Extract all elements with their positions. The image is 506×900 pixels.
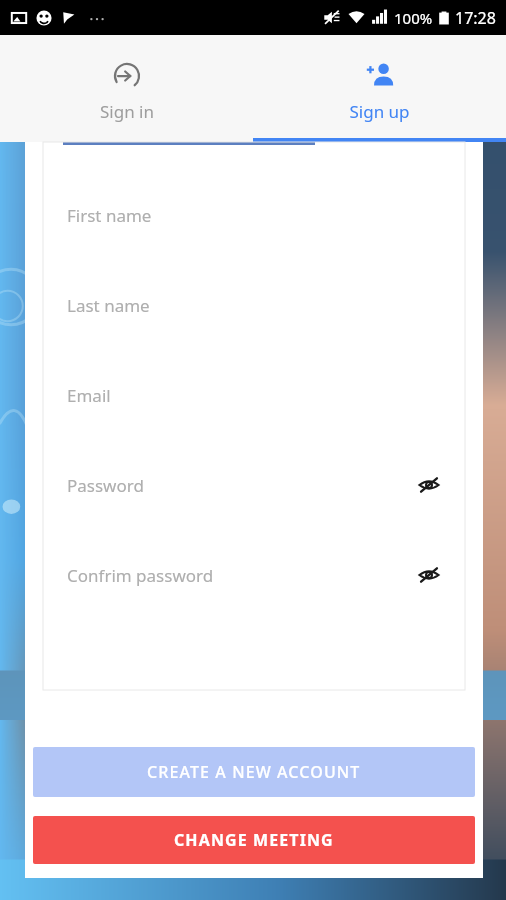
other: Sign in bbox=[112, 61, 142, 91]
button[interactable]: CREATE A NEW ACCOUNT bbox=[33, 747, 475, 797]
staticText: Sign up bbox=[349, 100, 410, 123]
button[interactable]: Confrim password bbox=[43, 560, 465, 590]
staticText: 17:28 bbox=[455, 7, 496, 29]
staticText: Email bbox=[67, 384, 111, 407]
staticText: CHANGE MEETING bbox=[174, 829, 334, 851]
button[interactable]: Toggle password visibility bbox=[415, 471, 443, 499]
button[interactable]: Sign in bbox=[0, 35, 253, 123]
staticText: 100% bbox=[394, 8, 433, 28]
button[interactable]: Sign up bbox=[253, 35, 506, 123]
staticText: Sign in bbox=[100, 100, 154, 123]
button[interactable]: CHANGE MEETING bbox=[33, 816, 475, 864]
button[interactable]: Email bbox=[43, 380, 465, 410]
other: Sign up bbox=[365, 61, 395, 91]
staticText: CREATE A NEW ACCOUNT bbox=[147, 761, 361, 783]
staticText: Password bbox=[67, 474, 144, 497]
staticText: Last name bbox=[67, 294, 150, 317]
button[interactable]: First name bbox=[43, 200, 465, 230]
staticText: First name bbox=[67, 204, 152, 227]
staticText: Confrim password bbox=[67, 564, 214, 587]
button[interactable]: Last name bbox=[43, 290, 465, 320]
button[interactable]: Password bbox=[43, 470, 465, 500]
button[interactable]: Toggle password visibility bbox=[415, 561, 443, 589]
